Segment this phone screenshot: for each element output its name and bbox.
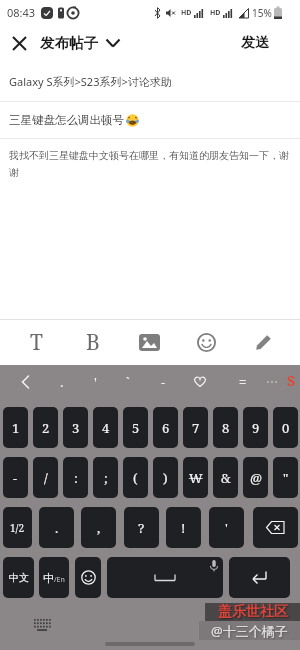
staticText: / bbox=[44, 469, 48, 487]
button[interactable]: 9 bbox=[243, 407, 268, 448]
button[interactable]: T bbox=[8, 320, 64, 365]
staticText: 1/2 bbox=[10, 521, 25, 535]
staticText: 6 bbox=[162, 419, 170, 437]
button[interactable]: 三星键盘怎么调出顿号 bbox=[0, 102, 300, 138]
button[interactable] bbox=[121, 320, 178, 365]
staticText: - bbox=[13, 469, 18, 487]
staticText: , bbox=[97, 519, 101, 537]
staticText: 7 bbox=[192, 419, 200, 437]
staticText: 盖乐世社区 bbox=[218, 603, 288, 621]
button[interactable]: ) bbox=[153, 457, 178, 498]
staticText: 0 bbox=[282, 419, 290, 437]
staticText: 15% bbox=[252, 6, 272, 20]
button[interactable]: 5 bbox=[123, 407, 148, 448]
staticText: = bbox=[239, 373, 247, 391]
staticText: 3 bbox=[72, 419, 80, 437]
staticText: /En bbox=[54, 575, 65, 585]
button[interactable]: ₩ bbox=[183, 457, 208, 498]
button[interactable]: - bbox=[152, 365, 174, 398]
button[interactable]: 2 bbox=[33, 407, 58, 448]
staticText: ' bbox=[94, 373, 97, 391]
staticText: 9 bbox=[252, 419, 260, 437]
staticText: ' bbox=[225, 519, 228, 537]
button[interactable]: ; bbox=[93, 457, 118, 498]
button[interactable] bbox=[75, 557, 101, 598]
button[interactable]: ? bbox=[124, 507, 159, 548]
button[interactable] bbox=[107, 557, 223, 598]
staticText: B bbox=[86, 328, 100, 357]
button[interactable]: ( bbox=[123, 457, 148, 498]
staticText: & bbox=[221, 469, 231, 487]
staticText: 三星键盘怎么调出顿号 bbox=[9, 113, 124, 127]
button[interactable] bbox=[178, 320, 235, 365]
button[interactable] bbox=[189, 365, 211, 398]
button[interactable]: 1 bbox=[3, 407, 28, 448]
staticText: ; bbox=[104, 469, 108, 487]
staticText: 8 bbox=[222, 419, 230, 437]
staticText: 我找不到三星键盘中文顿号在哪里，有知道的朋友告知一下，谢谢 bbox=[9, 149, 297, 179]
button[interactable]: , bbox=[81, 507, 116, 548]
staticText: HD bbox=[210, 8, 221, 18]
button[interactable]: ` bbox=[117, 365, 139, 398]
staticText: HD bbox=[181, 8, 192, 18]
staticText: " bbox=[283, 469, 289, 487]
staticText: ₩ bbox=[189, 469, 203, 487]
button[interactable]: : bbox=[63, 457, 88, 498]
button[interactable]: . bbox=[39, 507, 74, 548]
button[interactable]: Galaxy S系列>S23系列>讨论求助 bbox=[0, 61, 300, 101]
staticText: ` bbox=[126, 373, 130, 391]
button[interactable]: 3 bbox=[63, 407, 88, 448]
staticText: T bbox=[30, 328, 43, 357]
staticText: S bbox=[287, 371, 296, 390]
staticText: 5 bbox=[132, 419, 140, 437]
staticText: 发布帖子 bbox=[40, 34, 98, 52]
staticText: - bbox=[161, 373, 166, 391]
button[interactable]: 中 bbox=[39, 557, 69, 598]
staticText: 1 bbox=[12, 419, 20, 437]
staticText: 中文 bbox=[9, 571, 29, 584]
button[interactable] bbox=[8, 32, 30, 54]
staticText: . bbox=[55, 519, 59, 537]
button[interactable]: . bbox=[51, 365, 73, 398]
staticText: . bbox=[60, 373, 64, 391]
staticText: 中 bbox=[43, 571, 54, 585]
button[interactable]: - bbox=[3, 457, 28, 498]
button[interactable]: & bbox=[213, 457, 238, 498]
button[interactable]: / bbox=[33, 457, 58, 498]
button[interactable]: 中文 bbox=[3, 557, 34, 598]
button[interactable] bbox=[235, 320, 292, 365]
staticText: @ bbox=[250, 469, 262, 487]
button[interactable]: 7 bbox=[183, 407, 208, 448]
staticText: 2 bbox=[42, 419, 50, 437]
staticText: 4 bbox=[102, 419, 110, 437]
button[interactable]: 6 bbox=[153, 407, 178, 448]
button[interactable]: ' bbox=[209, 507, 244, 548]
button[interactable]: 发布帖子 bbox=[40, 34, 120, 52]
button[interactable]: 发送 bbox=[237, 30, 300, 56]
staticText: ! bbox=[181, 519, 186, 537]
staticText: @十三个橘子 bbox=[211, 622, 288, 640]
button[interactable]: ! bbox=[166, 507, 201, 548]
staticText: ( bbox=[133, 469, 138, 487]
staticText: Galaxy S系列>S23系列>讨论求助 bbox=[9, 74, 172, 89]
staticText: 发送 bbox=[241, 34, 269, 52]
button[interactable]: B bbox=[64, 320, 121, 365]
staticText: ) bbox=[163, 469, 168, 487]
button[interactable]: " bbox=[273, 457, 298, 498]
button[interactable] bbox=[253, 507, 298, 548]
button[interactable]: 4 bbox=[93, 407, 118, 448]
button[interactable] bbox=[229, 557, 290, 598]
staticText: : bbox=[74, 469, 78, 487]
staticText: 08:43 bbox=[7, 5, 36, 20]
button[interactable]: @ bbox=[243, 457, 268, 498]
button[interactable]: 1/2 bbox=[3, 507, 32, 548]
button[interactable]: 8 bbox=[213, 407, 238, 448]
button[interactable]: = bbox=[232, 365, 254, 398]
button[interactable] bbox=[14, 365, 36, 398]
button[interactable]: 0 bbox=[273, 407, 298, 448]
staticText: ? bbox=[138, 519, 145, 537]
button[interactable]: ' bbox=[84, 365, 106, 398]
